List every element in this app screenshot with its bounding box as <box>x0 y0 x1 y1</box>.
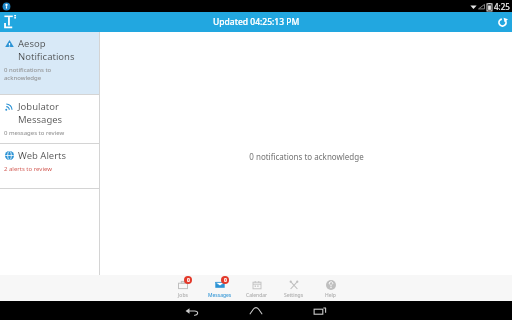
staticText: 0 <box>187 277 190 284</box>
staticText: Help <box>325 292 336 299</box>
staticText: 0 messages to review <box>4 129 65 137</box>
staticText: Aesop <box>18 37 46 50</box>
staticText: Updated 04:25:13 PM <box>213 16 300 28</box>
staticText: 2 alerts to review <box>4 165 52 173</box>
button[interactable]: Refresh <box>492 12 512 32</box>
button[interactable]: Jobulator <box>0 95 100 143</box>
button[interactable]: Web Alerts <box>0 144 100 188</box>
button[interactable]: 0 <box>164 275 201 301</box>
staticText: Calendar <box>246 292 268 299</box>
button[interactable]: Aesop <box>0 32 100 94</box>
staticText: 4:25 <box>494 1 510 12</box>
button[interactable]: 0 <box>201 275 238 301</box>
staticText: Jobulator <box>18 100 59 113</box>
staticText: 0 notifications to acknowledge <box>249 151 364 162</box>
button[interactable]: Home <box>224 301 288 320</box>
staticText: Jobs <box>178 292 188 299</box>
button[interactable]: Help <box>312 275 349 301</box>
staticText: Notifications <box>18 50 75 63</box>
staticText: 0 <box>224 277 227 284</box>
staticText: Web Alerts <box>18 149 67 162</box>
button[interactable]: Calendar <box>238 275 275 301</box>
button[interactable]: Settings <box>275 275 312 301</box>
button[interactable]: Recent apps <box>288 301 352 320</box>
staticText: 0 notifications to acknowledge <box>4 66 52 82</box>
button[interactable]: Back <box>160 301 224 320</box>
staticText: Messages <box>18 113 63 126</box>
staticText: Messages <box>208 292 232 299</box>
staticText: Settings <box>284 292 304 299</box>
button[interactable]: Jobulator logo <box>0 12 20 32</box>
